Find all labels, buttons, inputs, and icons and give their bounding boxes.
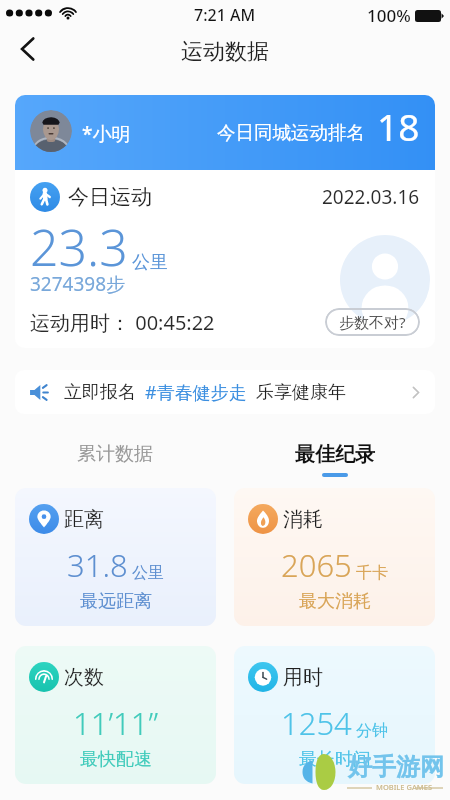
- staticText: 2022.03.16: [322, 184, 420, 210]
- staticText: *小明: [82, 121, 131, 147]
- staticText: 次数: [64, 665, 104, 690]
- staticText: 最长时间: [299, 748, 371, 771]
- staticText: 今日运动: [68, 184, 152, 210]
- staticText: 距离: [64, 507, 104, 532]
- button[interactable]: 消耗: [234, 488, 435, 626]
- staticText: 最佳纪录: [295, 442, 375, 467]
- staticText: 最远距离: [80, 590, 152, 613]
- staticText: 立即报名: [64, 381, 136, 404]
- button[interactable]: 最佳纪录: [291, 440, 379, 479]
- staticText: 好手游网: [348, 752, 444, 782]
- staticText: 分钟: [356, 721, 388, 741]
- button[interactable]: Back: [9, 30, 47, 68]
- staticText: 2065: [281, 544, 352, 586]
- staticText: 运动数据: [181, 38, 269, 66]
- button[interactable]: 次数: [15, 646, 216, 784]
- staticText: 7:21 AM: [194, 4, 256, 26]
- staticText: 公里: [132, 251, 168, 274]
- staticText: 消耗: [283, 507, 323, 532]
- staticText: 运动用时： 00:45:22: [30, 309, 215, 336]
- button[interactable]: 用时: [234, 646, 435, 784]
- staticText: 100%: [367, 4, 411, 27]
- button[interactable]: 累计数据: [73, 440, 157, 474]
- staticText: #青春健步走: [145, 380, 247, 405]
- staticText: 18: [377, 101, 420, 151]
- staticText: 今日同城运动排名: [217, 121, 365, 144]
- staticText: MOBILE GAMES: [376, 782, 433, 792]
- staticText: 步数不对?: [339, 312, 406, 332]
- staticText: 乐享健康年: [256, 381, 346, 404]
- button[interactable]: 距离: [15, 488, 216, 626]
- button[interactable]: 立即报名: [15, 370, 435, 414]
- staticText: 累计数据: [77, 442, 153, 466]
- staticText: 11’11”: [73, 702, 159, 744]
- staticText: 最快配速: [80, 748, 152, 771]
- button[interactable]: 步数不对?: [325, 308, 420, 336]
- staticText: 3274398步: [30, 271, 126, 297]
- staticText: 1254: [281, 702, 352, 744]
- staticText: 千卡: [356, 563, 388, 583]
- staticText: 最大消耗: [299, 590, 371, 613]
- staticText: 31.8: [67, 544, 128, 586]
- button[interactable]: *小明: [15, 95, 435, 170]
- staticText: 23.3: [30, 213, 128, 281]
- staticText: 公里: [132, 563, 164, 583]
- staticText: 用时: [283, 665, 323, 690]
